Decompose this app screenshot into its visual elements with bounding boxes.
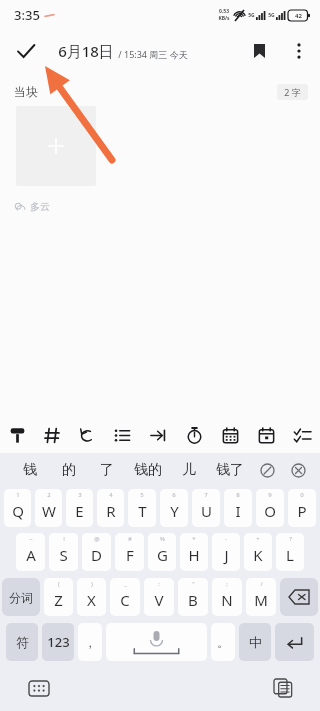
staticText: 8 [236, 491, 240, 499]
button[interactable]: 的 [49, 453, 88, 487]
button[interactable]: Backspace [280, 578, 318, 616]
button[interactable]: 分词 [2, 578, 40, 616]
staticText: 6 [172, 491, 176, 499]
staticText: 42 [295, 12, 302, 20]
staticText: 9 [268, 491, 272, 499]
button[interactable]: 8 [224, 489, 252, 527]
button[interactable]: Format brush [0, 417, 35, 453]
button[interactable]: Enter [275, 623, 314, 661]
button[interactable]: 钱了 [208, 453, 252, 487]
button[interactable]: Switch keyboard [24, 673, 54, 703]
button[interactable]: ; [212, 578, 242, 616]
button[interactable]: % [148, 533, 176, 571]
button[interactable]: * [180, 533, 208, 571]
button[interactable]: ? [276, 533, 304, 571]
button[interactable]: Close [282, 454, 314, 486]
button[interactable]: 9 [256, 489, 284, 527]
button[interactable]: 中 [239, 623, 271, 661]
button[interactable]: 。 [211, 623, 235, 661]
button[interactable]: - [212, 533, 240, 571]
staticText: T [138, 501, 147, 521]
staticText: A [26, 545, 36, 565]
staticText: L [286, 545, 294, 565]
staticText: H [188, 545, 200, 565]
button[interactable]: ! [49, 533, 78, 571]
staticText: 2 [47, 491, 51, 499]
button[interactable]: 2 [35, 489, 62, 527]
button[interactable]: 3 [66, 489, 93, 527]
staticText: @ [94, 535, 100, 543]
staticText: " [192, 580, 195, 588]
staticText: # [128, 535, 132, 543]
staticText: 的 [62, 461, 76, 479]
button[interactable]: 钱的 [126, 453, 170, 487]
staticText: 了 [100, 461, 114, 479]
button[interactable]: # [115, 533, 144, 571]
button[interactable]: Timer [176, 417, 212, 453]
staticText: ; [226, 580, 228, 588]
staticText: 当块 [14, 84, 38, 99]
staticText: F [126, 545, 134, 565]
staticText: 5G [248, 12, 255, 19]
staticText: 中 [249, 634, 262, 650]
button[interactable]: Checklist [284, 417, 320, 453]
button[interactable]: 4 [97, 489, 124, 527]
button[interactable]: 0 [288, 489, 316, 527]
button[interactable]: 6 [160, 489, 188, 527]
button[interactable]: 1 [4, 489, 31, 527]
staticText: 5 [140, 491, 144, 499]
staticText: X [87, 590, 96, 610]
button[interactable]: + [244, 533, 272, 571]
staticText: * [192, 535, 196, 543]
staticText: 6月18日 [58, 41, 114, 61]
staticText: M [254, 590, 268, 610]
button[interactable]: 了 [88, 453, 126, 487]
button[interactable]: 儿 [170, 453, 208, 487]
button[interactable]: Undo [70, 417, 105, 453]
button[interactable]: Indent [140, 417, 176, 453]
button[interactable]: More options [282, 34, 316, 68]
button[interactable]: Add image [16, 106, 96, 186]
button[interactable]: Disable [252, 455, 282, 485]
staticText: - [225, 535, 227, 543]
button[interactable]: Clipboard [268, 673, 298, 703]
button[interactable]: Done [6, 31, 46, 71]
button[interactable]: Bullet list [105, 417, 140, 453]
button[interactable]: " [178, 578, 208, 616]
staticText: S [59, 545, 68, 565]
button[interactable]: 123 [42, 623, 74, 661]
staticText: Z [54, 590, 63, 610]
button[interactable]: 符 [6, 623, 38, 661]
staticText: _ [124, 580, 127, 588]
button[interactable]: Bookmark [242, 34, 276, 68]
staticText: 1 [16, 491, 20, 499]
button[interactable]: _ [110, 578, 140, 616]
button[interactable]: 5 [128, 489, 156, 527]
button[interactable]: Space [106, 623, 207, 661]
button[interactable]: 2 字 [277, 84, 308, 100]
staticText: 钱的 [134, 461, 162, 479]
button[interactable]: : [144, 578, 174, 616]
button[interactable]: / [246, 578, 276, 616]
button[interactable]: Calendar [212, 417, 248, 453]
staticText: E [75, 501, 84, 521]
staticText: V [154, 590, 164, 610]
staticText: O [264, 501, 276, 521]
staticText: P [297, 501, 307, 521]
button[interactable]: 钱 [10, 453, 49, 487]
staticText: Y [170, 501, 179, 521]
staticText: 分词 [9, 590, 33, 605]
button[interactable]: 7 [192, 489, 220, 527]
button[interactable]: ， [78, 623, 102, 661]
button[interactable]: ) [77, 578, 106, 616]
staticText: KB/s [218, 15, 230, 22]
button[interactable]: ( [44, 578, 73, 616]
staticText: R [106, 501, 116, 521]
button[interactable]: Date [248, 417, 284, 453]
button[interactable]: Heading [35, 417, 70, 453]
staticText: D [91, 545, 102, 565]
button[interactable]: ~ [16, 533, 45, 571]
button[interactable]: @ [82, 533, 111, 571]
staticText: / 15:34 周三 今天 [118, 48, 188, 60]
staticText: 3:35 [14, 6, 40, 24]
